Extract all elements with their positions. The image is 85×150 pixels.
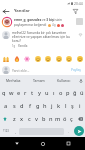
staticText: ğ bbox=[73, 89, 77, 97]
button[interactable]: ı bbox=[50, 86, 57, 99]
staticText: q bbox=[2, 89, 6, 97]
button[interactable]: Send bbox=[73, 125, 84, 137]
button[interactable] bbox=[54, 54, 63, 63]
button[interactable] bbox=[64, 54, 73, 63]
staticText: v bbox=[35, 115, 38, 123]
staticText: j bbox=[51, 102, 53, 110]
staticText: p bbox=[66, 89, 70, 97]
staticText: emre_g, gonzalez ve 3 kişi sizin bbox=[14, 18, 62, 22]
button[interactable]: Backspace bbox=[75, 112, 85, 125]
staticText: 4g bbox=[52, 23, 56, 27]
staticText: b bbox=[42, 115, 46, 123]
staticText: y bbox=[38, 89, 41, 97]
button[interactable]: i bbox=[76, 99, 83, 112]
button[interactable]: w bbox=[8, 86, 15, 99]
staticText: Tamam bbox=[33, 78, 45, 83]
staticText: h bbox=[43, 102, 47, 110]
staticText: melhel22 Sonunda bir çok kasvetten eller… bbox=[12, 31, 77, 43]
button[interactable]: Kullanıcı bbox=[51, 75, 76, 86]
button[interactable]: Shift bbox=[0, 112, 10, 125]
button[interactable]: ü bbox=[78, 86, 85, 99]
button[interactable]: o bbox=[57, 86, 64, 99]
button[interactable]: j bbox=[48, 99, 55, 112]
button[interactable]: m bbox=[54, 112, 61, 125]
staticText: Merhaba bbox=[6, 78, 21, 83]
button[interactable]: ş bbox=[69, 99, 76, 112]
button[interactable]: b bbox=[40, 112, 47, 125]
button[interactable]: Merhaba bbox=[0, 75, 26, 86]
staticText: m bbox=[55, 115, 61, 123]
staticText: ?123 bbox=[3, 129, 9, 133]
button[interactable]: v bbox=[33, 112, 40, 125]
staticText: z bbox=[13, 115, 16, 123]
button[interactable]: p bbox=[64, 86, 71, 99]
staticText: f bbox=[29, 102, 31, 110]
button[interactable]: d bbox=[18, 99, 26, 112]
button[interactable]: Comma bbox=[12, 125, 19, 137]
staticText: ö bbox=[63, 115, 67, 123]
staticText: c bbox=[28, 115, 31, 123]
staticText: Kullanıcı bbox=[57, 78, 71, 83]
button[interactable]: q bbox=[0, 86, 8, 99]
button[interactable]: f bbox=[26, 99, 34, 112]
staticText: w bbox=[9, 89, 14, 97]
button[interactable]: ?123 bbox=[0, 125, 12, 137]
button[interactable]: Paylaş bbox=[70, 67, 82, 73]
button[interactable]: r bbox=[22, 86, 29, 99]
staticText: x bbox=[20, 115, 24, 123]
staticText: . bbox=[68, 129, 69, 134]
button[interactable]: h bbox=[41, 99, 48, 112]
button[interactable]: Filter bbox=[70, 6, 81, 16]
button[interactable]: Voice input bbox=[76, 75, 85, 86]
button[interactable] bbox=[43, 54, 52, 63]
button[interactable]: Recent apps bbox=[59, 137, 77, 150]
button[interactable]: Tamam bbox=[26, 75, 51, 86]
button[interactable] bbox=[12, 54, 21, 63]
button[interactable]: c bbox=[26, 112, 33, 125]
button[interactable]: l bbox=[62, 99, 69, 112]
staticText: i bbox=[79, 102, 81, 110]
button[interactable]: a bbox=[2, 99, 10, 112]
staticText: e bbox=[17, 89, 21, 97]
button[interactable]: Home bbox=[34, 137, 52, 150]
button[interactable]: k bbox=[55, 99, 62, 112]
staticText: 1g bbox=[12, 44, 16, 48]
button[interactable]: t bbox=[29, 86, 36, 99]
button[interactable]: x bbox=[18, 112, 26, 125]
staticText: ş bbox=[71, 102, 74, 110]
staticText: Yanıtlar bbox=[14, 8, 30, 14]
button[interactable]: Back bbox=[0, 6, 12, 16]
button[interactable]: s bbox=[10, 99, 18, 112]
button[interactable]: ö bbox=[61, 112, 68, 125]
staticText: Yanıtla bbox=[18, 44, 28, 48]
staticText: , bbox=[15, 129, 16, 134]
staticText: ç bbox=[70, 115, 73, 123]
staticText: g bbox=[36, 102, 40, 110]
button[interactable] bbox=[75, 54, 84, 63]
button[interactable] bbox=[22, 54, 31, 63]
button[interactable]: g bbox=[34, 99, 41, 112]
button[interactable]: melhel22 Sonunda bir çok kasvetten eller… bbox=[0, 31, 85, 48]
staticText: u bbox=[45, 89, 49, 97]
button[interactable]: emre_g, gonzalez ve 3 kişi sizin bbox=[0, 17, 85, 27]
button[interactable]: n bbox=[47, 112, 54, 125]
button[interactable]: Back bbox=[8, 137, 26, 150]
staticText: ı bbox=[53, 89, 55, 97]
staticText: r bbox=[24, 89, 27, 97]
staticText: 20:44 bbox=[74, 1, 83, 6]
button[interactable] bbox=[1, 54, 10, 63]
staticText: n bbox=[49, 115, 53, 123]
button[interactable] bbox=[33, 54, 42, 63]
staticText: ü bbox=[80, 89, 84, 97]
staticText: a bbox=[4, 102, 8, 110]
button[interactable]: z bbox=[10, 112, 18, 125]
button[interactable]: e bbox=[15, 86, 22, 99]
button[interactable]: y bbox=[36, 86, 43, 99]
button[interactable]: ğ bbox=[71, 86, 78, 99]
staticText: k bbox=[57, 102, 61, 110]
button[interactable]: u bbox=[43, 86, 50, 99]
button[interactable]: ç bbox=[68, 112, 75, 125]
staticText: s bbox=[13, 102, 16, 110]
